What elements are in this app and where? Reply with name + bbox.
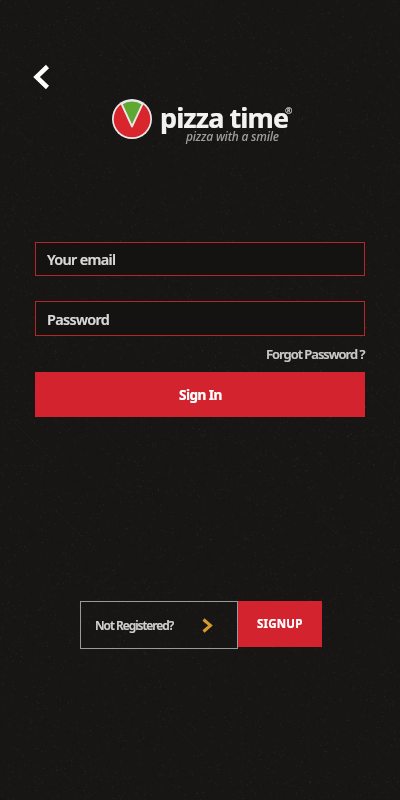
- button[interactable]: [26, 58, 58, 96]
- staticText: ®: [285, 104, 293, 116]
- button[interactable]: Sign In: [35, 372, 365, 417]
- staticText: Not Registered?: [95, 617, 174, 633]
- button[interactable]: Password: [35, 301, 365, 336]
- staticText: SIGNUP: [257, 616, 303, 632]
- staticText: Sign In: [179, 386, 222, 404]
- button[interactable]: SIGNUP: [238, 601, 322, 647]
- staticText: pizza with a smile: [186, 128, 279, 144]
- staticText: Your email: [47, 249, 116, 269]
- staticText: pizza time: [160, 99, 289, 136]
- button[interactable]: Your email: [35, 242, 365, 276]
- staticText: Forgot Password ?: [266, 345, 365, 363]
- staticText: Password: [47, 309, 110, 329]
- button[interactable]: Forgot Password ?: [266, 345, 365, 363]
- button[interactable]: Not Registered?: [80, 601, 238, 649]
